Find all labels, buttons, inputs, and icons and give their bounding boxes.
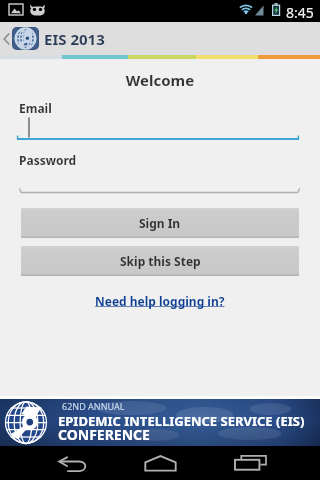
staticText: Skip this Step bbox=[120, 253, 201, 269]
staticText: Email bbox=[19, 100, 52, 116]
staticText: Sign In bbox=[139, 215, 181, 231]
button[interactable]: Recent apps bbox=[225, 450, 275, 476]
staticText: 62ND ANNUAL bbox=[62, 400, 125, 412]
staticText: EPIDEMIC INTELLIGENCE SERVICE (EIS) bbox=[58, 412, 305, 430]
button[interactable]: Sign In bbox=[21, 208, 299, 238]
staticText: Password bbox=[19, 152, 77, 168]
button[interactable] bbox=[14, 116, 306, 142]
button[interactable]: Back bbox=[47, 453, 99, 477]
staticText: EIS 2013 bbox=[44, 29, 105, 49]
button[interactable] bbox=[14, 170, 306, 196]
staticText: CONFERENCE bbox=[58, 425, 150, 444]
staticText: 8:45 bbox=[286, 3, 314, 22]
staticText: Welcome bbox=[0, 70, 320, 90]
button[interactable]: Need help logging in? bbox=[95, 293, 225, 309]
button[interactable]: Skip this Step bbox=[21, 246, 299, 276]
button[interactable]: Home bbox=[135, 450, 185, 476]
button[interactable]: EIS 2013 bbox=[0, 22, 105, 55]
